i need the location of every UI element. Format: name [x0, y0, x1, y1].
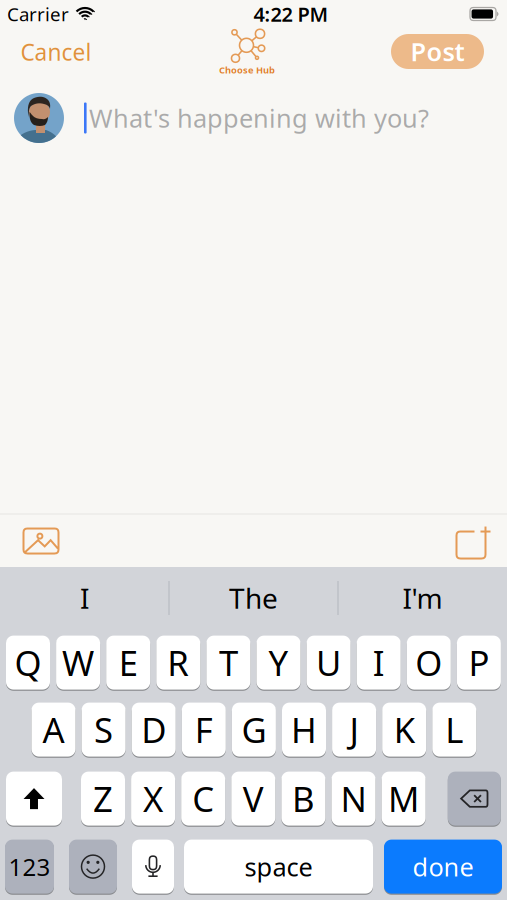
button[interactable]: Cancel: [20, 37, 91, 67]
staticText: done: [412, 850, 473, 883]
button[interactable]: Choose Hub: [219, 28, 275, 76]
staticText: R: [167, 640, 189, 686]
button[interactable]: A: [31, 702, 75, 757]
staticText: What's happening with you?: [89, 101, 429, 135]
button[interactable]: U: [307, 635, 351, 690]
button[interactable]: Q: [6, 635, 50, 690]
staticText: U: [316, 640, 341, 686]
staticText: K: [394, 707, 415, 753]
staticText: Q: [14, 640, 41, 686]
staticText: X: [143, 776, 163, 822]
button[interactable]: R: [156, 635, 200, 690]
button[interactable]: space: [184, 839, 373, 894]
button[interactable]: V: [231, 771, 275, 826]
button[interactable]: I: [4, 576, 164, 620]
button[interactable]: N: [331, 771, 375, 826]
staticText: 123: [8, 851, 50, 883]
button[interactable]: B: [281, 771, 325, 826]
button[interactable]: done: [384, 839, 502, 894]
staticText: space: [244, 850, 312, 883]
button[interactable]: J: [332, 702, 376, 757]
button[interactable]: T: [206, 635, 250, 690]
button[interactable]: L: [432, 702, 476, 757]
staticText: E: [119, 640, 138, 686]
staticText: I: [373, 640, 385, 686]
button[interactable]: E: [106, 635, 150, 690]
staticText: T: [219, 640, 238, 686]
staticText: V: [243, 776, 264, 822]
staticText: Cancel: [20, 37, 91, 67]
button[interactable]: Shift: [6, 771, 62, 826]
button[interactable]: X: [131, 771, 175, 826]
staticText: N: [340, 776, 366, 822]
staticText: C: [192, 776, 214, 822]
staticText: Z: [93, 776, 113, 822]
staticText: W: [62, 640, 94, 686]
button[interactable]: Delete: [448, 771, 501, 826]
staticText: D: [141, 707, 166, 753]
staticText: H: [291, 707, 317, 753]
button[interactable]: I'm: [342, 576, 502, 620]
button[interactable]: The: [173, 576, 333, 620]
staticText: L: [445, 707, 463, 753]
staticText: Post: [410, 35, 464, 68]
button[interactable]: Dictate: [132, 839, 174, 894]
staticText: I: [80, 579, 89, 617]
button[interactable]: Post: [391, 34, 484, 69]
staticText: O: [415, 640, 442, 686]
button[interactable]: H: [282, 702, 326, 757]
button[interactable]: I: [357, 635, 401, 690]
button[interactable]: G: [232, 702, 276, 757]
button[interactable]: O: [407, 635, 451, 690]
staticText: 4:22 PM: [253, 1, 328, 27]
staticText: M: [388, 776, 419, 822]
button[interactable]: F: [182, 702, 226, 757]
button[interactable]: C: [181, 771, 225, 826]
button[interactable]: Emoji: [69, 839, 117, 894]
button[interactable]: M: [382, 771, 426, 826]
button[interactable]: Z: [81, 771, 125, 826]
staticText: A: [42, 707, 64, 753]
staticText: I'm: [402, 579, 442, 617]
button[interactable]: W: [56, 635, 100, 690]
button[interactable]: K: [382, 702, 426, 757]
button[interactable]: S: [82, 702, 126, 757]
staticText: The: [229, 579, 278, 617]
button[interactable]: 123: [5, 839, 54, 894]
staticText: F: [195, 707, 213, 753]
staticText: P: [468, 640, 489, 686]
staticText: S: [94, 707, 113, 753]
staticText: J: [350, 707, 359, 753]
button[interactable]: P: [457, 635, 501, 690]
button[interactable]: New post: [450, 525, 485, 558]
staticText: Carrier: [7, 2, 69, 26]
staticText: Choose Hub: [219, 64, 275, 76]
staticText: G: [241, 707, 266, 753]
button[interactable]: Y: [256, 635, 300, 690]
staticText: Y: [268, 640, 288, 686]
button[interactable]: Add photo: [22, 527, 59, 554]
button[interactable]: D: [132, 702, 176, 757]
staticText: B: [292, 776, 315, 822]
